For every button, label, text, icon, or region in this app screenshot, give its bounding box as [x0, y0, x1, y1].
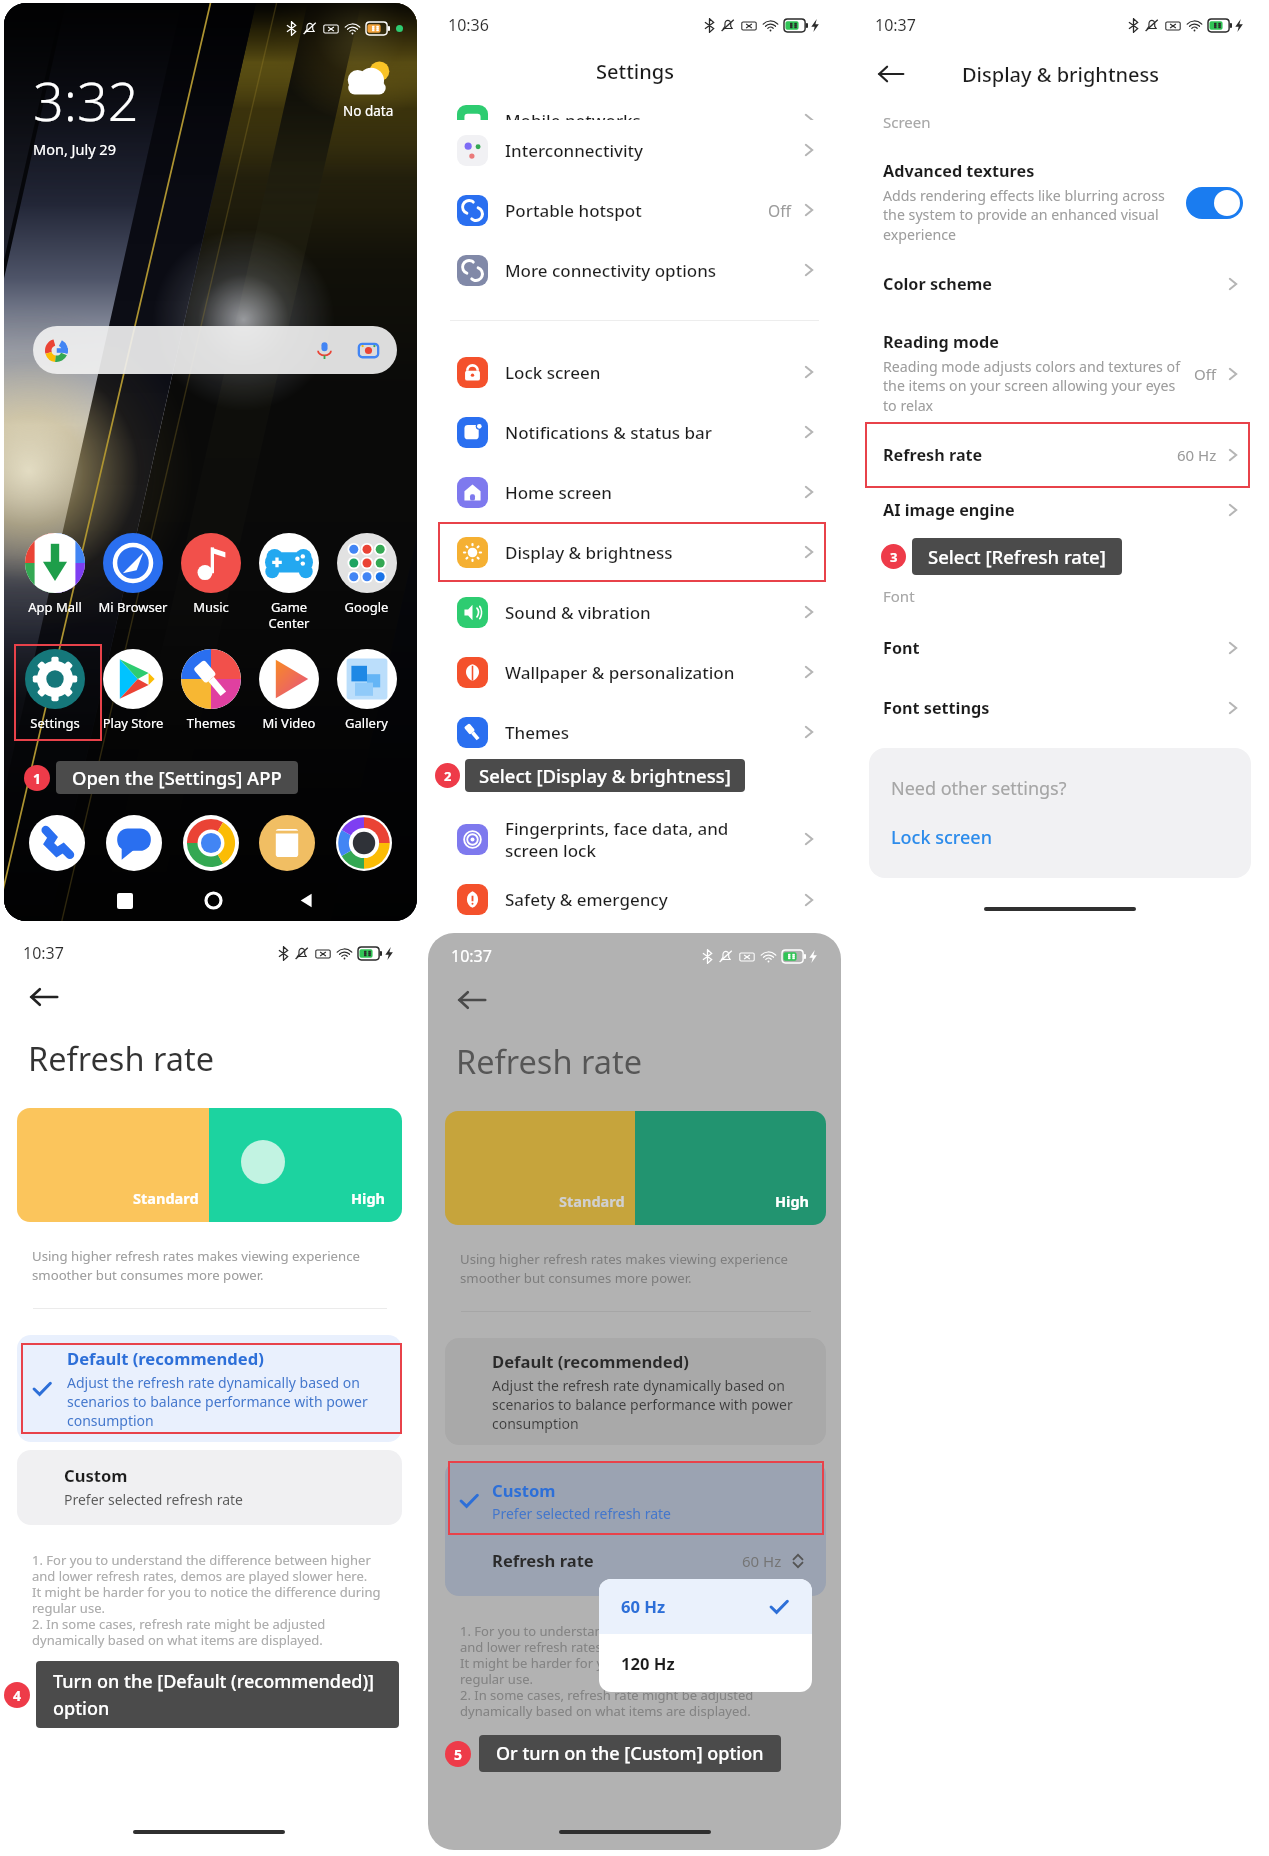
staticText: 10:36: [448, 14, 489, 36]
button[interactable]: Portable hotspot: [428, 180, 841, 240]
button[interactable]: Themes: [172, 649, 250, 732]
button[interactable]: Back: [29, 982, 59, 1012]
button[interactable]: Color scheme: [855, 267, 1265, 301]
button[interactable]: Home screen: [428, 462, 841, 522]
button[interactable]: Gallery: [328, 649, 405, 732]
staticText: Refresh rate: [28, 1036, 214, 1080]
button[interactable]: Default (recommended): [17, 1335, 402, 1442]
button[interactable]: Mobile networks: [428, 92, 841, 120]
button[interactable]: [29, 815, 85, 871]
button[interactable]: Custom: [17, 1450, 402, 1525]
button[interactable]: Google: [328, 533, 405, 616]
staticText: Or turn on the [Custom] option: [496, 1741, 764, 1766]
staticText: 1. For you to understand the difference …: [460, 1622, 809, 1720]
staticText: Themes: [172, 714, 250, 732]
button[interactable]: Font settings: [855, 691, 1265, 725]
staticText: 2: [444, 767, 452, 785]
button[interactable]: Font: [855, 631, 1265, 665]
button[interactable]: Reading mode: [855, 331, 1265, 416]
staticText: Home screen: [505, 481, 799, 504]
staticText: 10:37: [451, 945, 492, 967]
staticText: 60 Hz: [621, 1595, 768, 1618]
button[interactable]: More connectivity options: [428, 240, 841, 300]
staticText: 120 Hz: [621, 1652, 675, 1675]
button[interactable]: Refresh rate: [445, 1539, 826, 1596]
button[interactable]: Refresh rate: [855, 422, 1265, 488]
button[interactable]: App Mall: [16, 533, 94, 616]
staticText: Select [Refresh rate]: [928, 544, 1106, 569]
button[interactable]: Safety & emergency: [428, 874, 841, 925]
staticText: Sound & vibration: [505, 601, 799, 624]
button[interactable]: Notifications & status bar: [428, 402, 841, 462]
staticText: Open the [Settings] APP: [72, 765, 282, 790]
staticText: Font: [883, 586, 915, 606]
staticText: Mon, July 29: [33, 139, 116, 159]
staticText: Notifications & status bar: [505, 421, 799, 444]
button[interactable]: Game Center: [250, 533, 328, 632]
staticText: Default (recommended): [67, 1347, 264, 1370]
staticText: 1: [33, 769, 42, 788]
button[interactable]: Music: [172, 533, 250, 616]
staticText: Font: [883, 637, 1223, 659]
button[interactable]: Advanced textures toggle: [1186, 187, 1243, 219]
staticText: Custom: [64, 1464, 128, 1487]
staticText: Refresh rate: [883, 444, 1177, 466]
staticText: 3: [890, 548, 898, 566]
staticText: Portable hotspot: [505, 199, 768, 222]
button[interactable]: [106, 815, 162, 871]
staticText: High: [351, 1188, 386, 1208]
button[interactable]: Play Store: [94, 649, 172, 732]
staticText: Prefer selected refresh rate: [64, 1490, 243, 1509]
button[interactable]: [336, 815, 392, 871]
button[interactable]: 60 Hz: [599, 1579, 812, 1634]
staticText: 10:37: [875, 14, 916, 36]
button[interactable]: Back: [877, 60, 905, 88]
staticText: Display & brightness: [505, 541, 799, 564]
button[interactable]: Fingerprints, face data, and screen lock: [428, 804, 841, 874]
button[interactable]: Lock screen: [428, 342, 841, 402]
button[interactable]: Google search: [33, 326, 397, 374]
button[interactable]: 120 Hz: [599, 1634, 812, 1692]
button[interactable]: [183, 815, 239, 871]
staticText: Color scheme: [883, 273, 1223, 295]
staticText: 1. For you to understand the difference …: [32, 1551, 381, 1649]
button[interactable]: Settings: [16, 649, 94, 732]
staticText: Display & brightness: [962, 61, 1159, 88]
button[interactable]: Custom: [445, 1461, 826, 1539]
staticText: 60 Hz: [1177, 445, 1217, 465]
button[interactable]: Wallpaper & personalization: [428, 642, 841, 702]
staticText: Standard: [133, 1188, 199, 1208]
button[interactable]: Mi Video: [250, 649, 328, 732]
button[interactable]: Mi Browser: [94, 533, 172, 616]
button[interactable]: Display & brightness: [428, 522, 841, 582]
button[interactable]: Lock screen: [891, 825, 992, 850]
staticText: Adds rendering effects like blurring acr…: [883, 186, 1172, 245]
button[interactable]: Sound & vibration: [428, 582, 841, 642]
button[interactable]: Advanced textures: [855, 160, 1265, 245]
button[interactable]: [259, 815, 315, 871]
button[interactable]: Back: [298, 892, 315, 909]
staticText: Font settings: [883, 697, 1223, 719]
staticText: Adjust the refresh rate dynamically base…: [67, 1373, 388, 1430]
staticText: Adjust the refresh rate dynamically base…: [492, 1376, 812, 1433]
staticText: Off: [1194, 364, 1217, 384]
button[interactable]: Home: [204, 891, 223, 910]
staticText: Select [Display & brightness]: [479, 763, 731, 788]
staticText: Off: [768, 200, 791, 221]
button[interactable]: Back: [457, 985, 487, 1015]
staticText: Play Store: [94, 714, 172, 732]
staticText: App Mall: [16, 598, 94, 616]
staticText: Settings: [16, 714, 94, 732]
staticText: Lock screen: [891, 825, 992, 850]
button[interactable]: AI image engine: [855, 493, 1265, 527]
staticText: Advanced textures: [883, 160, 1035, 182]
button[interactable]: Interconnectivity: [428, 120, 841, 180]
staticText: No data: [343, 102, 394, 120]
button[interactable]: Default (recommended): [445, 1338, 826, 1445]
staticText: Screen: [883, 112, 931, 132]
staticText: Game Center: [250, 598, 328, 632]
staticText: Reading mode: [883, 331, 999, 353]
button[interactable]: Recents: [117, 893, 133, 909]
other: Back: [29, 982, 59, 1012]
button[interactable]: Themes: [428, 702, 841, 762]
